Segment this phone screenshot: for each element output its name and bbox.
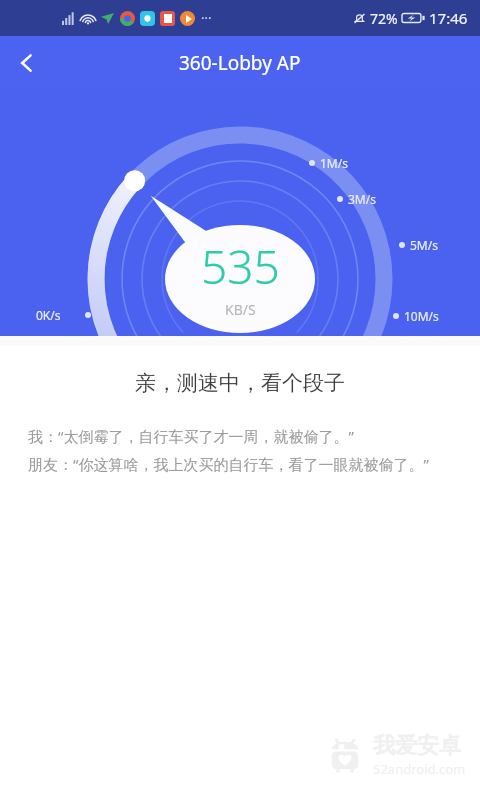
staticText: 52android.com [373, 760, 466, 778]
staticText: 360-Lobby AP [179, 50, 301, 76]
staticText: ··· [201, 9, 212, 27]
staticText: 5M/s [410, 237, 438, 253]
staticText: 1M/s [320, 155, 348, 171]
button[interactable]: Back [0, 36, 54, 90]
staticText: 72% [370, 9, 398, 28]
staticText: 我爱安卓 [373, 732, 461, 760]
staticText: 3M/s [348, 191, 376, 207]
staticText: 10M/s [404, 308, 439, 324]
staticText: 0K/s [36, 307, 61, 323]
staticText: 535 [201, 235, 280, 298]
staticText: KB/S [225, 300, 256, 319]
staticText: 17:46 [429, 8, 468, 28]
staticText: 我：“太倒霉了，自行车买了才一周，就被偷了。” 朋友：“你这算啥，我上次买的自行… [28, 426, 456, 475]
staticText: 亲，测速中，看个段子 [0, 370, 480, 396]
